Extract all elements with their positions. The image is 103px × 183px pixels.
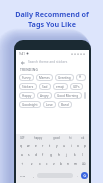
staticText: o [77, 144, 79, 148]
button[interactable]: y [54, 141, 60, 150]
staticText: GIFs [73, 85, 80, 89]
staticText: r [42, 144, 44, 148]
button[interactable]: Key [79, 159, 88, 168]
button[interactable]: u [61, 141, 67, 150]
button[interactable]: x [36, 159, 43, 168]
button[interactable]: r [40, 141, 46, 150]
button[interactable]: Key [17, 159, 27, 168]
staticText: x [39, 162, 41, 166]
button[interactable]: Memes [36, 74, 53, 81]
button[interactable]: Band [58, 101, 72, 108]
staticText: Funny [22, 76, 31, 80]
staticText: d [35, 153, 37, 157]
staticText: Daily Recommend of [15, 9, 89, 19]
button[interactable]: j [63, 150, 70, 159]
staticText: m [74, 162, 77, 166]
staticText: v [53, 162, 55, 166]
button[interactable]: GIFs [70, 83, 83, 90]
staticText: i [71, 144, 72, 148]
button[interactable]: Hi [84, 92, 86, 99]
staticText: happy [34, 136, 43, 140]
staticText: Sad [42, 85, 48, 89]
staticText: n [67, 162, 69, 166]
staticText: Band [61, 103, 69, 107]
staticText: ok [81, 136, 85, 140]
button[interactable]: Greeting [55, 74, 74, 81]
staticText: l [82, 153, 83, 157]
staticText: f [42, 153, 44, 157]
button[interactable]: g [47, 150, 54, 159]
staticText: . [77, 174, 78, 178]
button[interactable]: o [75, 141, 81, 150]
button[interactable]: s [26, 150, 32, 159]
button[interactable]: q [17, 141, 24, 150]
button[interactable]: Stickers [19, 83, 37, 90]
staticText: p [84, 144, 86, 148]
staticText: Stickers [22, 85, 34, 89]
button[interactable]: ?123 [17, 169, 29, 182]
button[interactable]: Good Morning [54, 92, 82, 99]
staticText: good [53, 136, 60, 140]
button[interactable]: z [28, 159, 35, 168]
button[interactable]: Funny [19, 74, 34, 81]
staticText: ⌧ [82, 162, 86, 165]
staticText: Greeting [58, 76, 71, 80]
button[interactable]: Goodnight [19, 101, 41, 108]
button[interactable]: w [25, 141, 32, 150]
staticText: Good Morning [57, 94, 79, 98]
staticText: GIF [20, 136, 25, 140]
button[interactable]: t [47, 141, 53, 150]
button[interactable]: Happy [76, 74, 86, 81]
staticText: Happy [79, 75, 83, 80]
staticText: c [46, 162, 48, 166]
button[interactable]: Comma [30, 169, 36, 182]
staticText: 9:41 [19, 52, 25, 56]
staticText: t [49, 144, 51, 148]
staticText: emoji [56, 85, 65, 89]
button[interactable]: Love [43, 101, 56, 108]
button[interactable]: k [71, 150, 78, 159]
button[interactable]: a [19, 150, 25, 159]
button[interactable]: Back [19, 59, 26, 66]
staticText: a [21, 153, 23, 157]
staticText: , [33, 174, 34, 178]
button[interactable]: v [51, 159, 57, 168]
staticText: TRENDING [20, 68, 38, 72]
button[interactable]: f [40, 150, 46, 159]
button[interactable]: Happy [19, 92, 35, 99]
staticText: h [58, 153, 60, 157]
staticText: y [56, 144, 58, 148]
staticText: Angry [40, 94, 49, 98]
button[interactable]: Sad [39, 83, 51, 90]
staticText: q [20, 144, 22, 148]
button[interactable]: e [33, 141, 39, 150]
staticText: g [50, 153, 52, 157]
button[interactable]: h [55, 150, 62, 159]
button[interactable]: emoji [53, 83, 68, 90]
button[interactable]: p [82, 141, 88, 150]
staticText: ?123 [20, 174, 26, 177]
button[interactable]: d [33, 150, 39, 159]
staticText: Happy [22, 94, 32, 98]
staticText: u [63, 144, 65, 148]
staticText: s [28, 153, 30, 157]
staticText: Memes [39, 76, 50, 80]
staticText: k [74, 153, 76, 157]
button[interactable]: Angry [37, 92, 52, 99]
button[interactable]: c [44, 159, 50, 168]
staticText: Tags You Like [28, 19, 76, 29]
button[interactable]: n [65, 159, 71, 168]
button[interactable]: Search [81, 172, 88, 179]
staticText: j [66, 153, 67, 157]
button[interactable]: m [72, 159, 78, 168]
button[interactable]: l [79, 150, 86, 159]
button[interactable]: i [68, 141, 74, 150]
button[interactable]: b [58, 159, 64, 168]
staticText: Search theme and stickers [28, 60, 68, 64]
staticText: z [31, 162, 33, 166]
staticText: e [35, 144, 37, 148]
staticText: b [60, 162, 62, 166]
staticText: ↑ [21, 162, 24, 165]
